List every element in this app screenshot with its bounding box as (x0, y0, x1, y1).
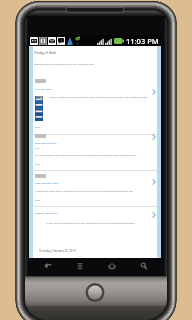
staticText: 11:03 PM (126, 36, 159, 46)
staticText: Random thoughts and opinions of mine. Th… (34, 63, 95, 66)
staticText: more (35, 163, 40, 166)
button[interactable]: Open article (149, 132, 158, 141)
button[interactable]: more (34, 198, 41, 203)
button[interactable]: more (34, 162, 41, 167)
staticText: more (35, 126, 40, 129)
button[interactable]: Open Statement to Blog (34, 181, 60, 186)
staticText: Sed ut perspiciatis unde omnis iste natu… (35, 154, 157, 157)
staticText: Blogger Newsletter (35, 211, 58, 214)
staticText: The Great jQuery (35, 88, 53, 91)
staticText: Open Statement to Blog (35, 182, 59, 185)
button[interactable]: Back (32, 259, 64, 272)
staticText: Title (35, 147, 40, 150)
button[interactable]: Menu (64, 259, 96, 272)
button[interactable]: Title (34, 146, 41, 151)
staticText: At vero eos et accusamus et iusto odio d… (46, 222, 149, 225)
button[interactable]: Blogger Newsletter (34, 210, 59, 215)
button[interactable]: Open article (149, 210, 158, 219)
button[interactable]: more (34, 125, 41, 130)
button[interactable]: Open article (149, 87, 158, 96)
button[interactable]: Open article (149, 177, 158, 186)
button[interactable]: The Great jQuery (34, 87, 54, 92)
staticText: Prodigy of Head (34, 51, 56, 55)
button[interactable]: Dave Blackmore Multi (34, 141, 58, 146)
button[interactable]: Home (96, 259, 128, 272)
staticText: Neque porro quisquam est qui dolorem ips… (35, 190, 157, 193)
staticText: more (35, 199, 40, 202)
button[interactable]: Search (128, 259, 160, 272)
staticText: Dave Blackmore Multi (35, 142, 57, 145)
staticText: Thursday, February 25, 2010 (39, 249, 76, 253)
staticText: Nullam ut ligula id nisl rutrum faucibus… (49, 96, 153, 99)
